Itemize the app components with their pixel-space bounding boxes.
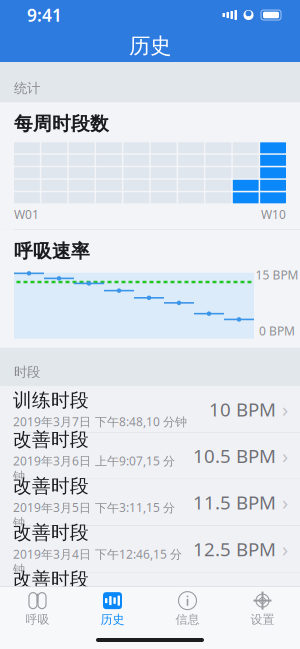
button[interactable]: 改善时段: [0, 479, 300, 526]
staticText: 9:41: [27, 3, 62, 26]
staticText: 训练时段: [13, 389, 89, 412]
staticText: ›: [282, 582, 288, 609]
staticText: 每周时段数: [14, 112, 109, 135]
button[interactable]: 呼吸: [0, 587, 75, 631]
staticText: 12.5 BPM: [193, 537, 276, 561]
button[interactable]: 设置: [225, 587, 300, 631]
staticText: 设置: [250, 612, 274, 627]
staticText: 11.5 BPM: [193, 490, 276, 515]
staticText: 2019年3月7日 下午8:48,10 分钟: [13, 414, 187, 429]
staticText: 改善时段: [13, 568, 89, 591]
staticText: ›: [282, 442, 288, 469]
staticText: 15 BPM: [255, 267, 298, 283]
button[interactable]: 改善时段: [0, 572, 300, 619]
staticText: ›: [282, 536, 288, 562]
staticText: 统计: [14, 80, 40, 96]
staticText: 2019年3月4日 下午12:46,15 分钟: [13, 546, 182, 577]
button[interactable]: 改善时段: [0, 619, 300, 649]
staticText: 历史: [100, 612, 124, 627]
button[interactable]: 信息: [150, 587, 225, 631]
staticText: 信息: [175, 612, 199, 627]
staticText: 0 BPM: [259, 323, 295, 339]
staticText: 10.5 BPM: [193, 443, 276, 468]
staticText: 呼吸速率: [14, 240, 90, 263]
staticText: 改善时段: [13, 428, 89, 451]
staticText: ›: [282, 489, 288, 516]
staticText: ›: [282, 396, 288, 422]
button[interactable]: 改善时段: [0, 526, 300, 572]
staticText: 2019年3月3日 下午4:08,15 分钟: [13, 593, 175, 623]
staticText: W10: [261, 206, 286, 222]
staticText: 时段: [14, 364, 40, 380]
staticText: 2019年3月6日 上午9:07,15 分钟: [13, 453, 175, 484]
button[interactable]: 训练时段: [0, 386, 300, 433]
staticText: 改善时段: [13, 474, 89, 497]
button[interactable]: 历史: [0, 30, 300, 62]
button[interactable]: 历史: [75, 587, 150, 631]
staticText: 改善时段: [13, 521, 89, 544]
staticText: 10 BPM: [209, 397, 276, 422]
staticText: 历史: [129, 33, 171, 59]
button[interactable]: 改善时段: [0, 433, 300, 479]
staticText: 2019年3月5日 下午3:11,15 分钟: [13, 499, 175, 530]
staticText: 13.5 BPM: [193, 583, 276, 608]
staticText: 改善时段: [13, 622, 89, 645]
staticText: 呼吸: [25, 612, 49, 627]
staticText: W01: [14, 206, 39, 222]
